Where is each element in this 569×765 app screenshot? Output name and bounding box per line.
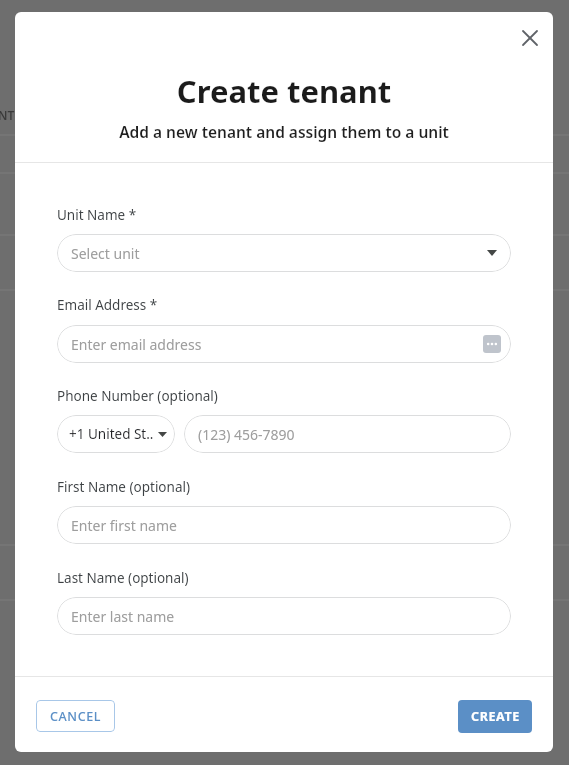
staticText: (123) 456-7890 <box>198 425 295 444</box>
staticText: Enter email address <box>71 335 202 354</box>
staticText: Enter first name <box>71 516 177 535</box>
button[interactable]: Close <box>510 18 550 58</box>
button[interactable]: Enter last name <box>57 597 511 635</box>
staticText: Enter last name <box>71 607 175 626</box>
button[interactable]: +1 United St.. <box>57 415 175 453</box>
button[interactable]: CANCEL <box>36 700 115 732</box>
button[interactable]: Select unit <box>57 234 511 272</box>
staticText: +1 United St.. <box>69 425 154 443</box>
button[interactable]: (123) 456-7890 <box>184 415 511 453</box>
staticText: CREATE <box>471 708 520 725</box>
staticText: Unit Name * <box>57 206 137 224</box>
button[interactable]: Enter email address <box>57 325 511 363</box>
staticText: First Name (optional) <box>57 478 190 496</box>
staticText: CANCEL <box>50 708 102 725</box>
staticText: Select unit <box>71 244 140 263</box>
button[interactable]: Autofill <box>483 335 501 353</box>
staticText: Phone Number (optional) <box>57 387 218 405</box>
button[interactable]: CREATE <box>458 700 532 733</box>
staticText: Last Name (optional) <box>57 569 189 587</box>
staticText: NT <box>0 107 15 123</box>
button[interactable]: Enter first name <box>57 506 511 544</box>
staticText: Create tenant <box>15 70 553 112</box>
staticText: Add a new tenant and assign them to a un… <box>15 121 553 142</box>
staticText: Email Address * <box>57 296 158 314</box>
